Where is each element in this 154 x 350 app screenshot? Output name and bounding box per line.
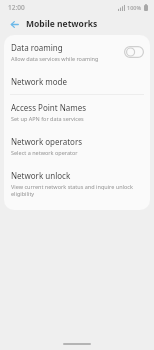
staticText: Allow data services while roaming (11, 55, 99, 62)
button[interactable]: Data roaming (4, 35, 150, 69)
button[interactable]: Back (7, 17, 21, 31)
staticText: Network mode (11, 76, 68, 87)
button[interactable]: Network operators (4, 129, 150, 163)
staticText: Network unlock (11, 170, 71, 181)
staticText: Mobile networks (26, 18, 98, 30)
button[interactable]: Access Point Names (4, 95, 150, 129)
staticText: Set up APN for data services (11, 115, 84, 122)
staticText: 100% (127, 4, 142, 11)
button[interactable]: Network unlock (4, 163, 150, 204)
staticText: Data roaming (11, 42, 63, 53)
staticText: 12:00 (8, 3, 25, 12)
staticText: Network operators (11, 136, 83, 147)
button[interactable]: Data roaming toggle (124, 46, 144, 58)
staticText: Access Point Names (11, 102, 87, 113)
staticText: View current network status and inquire … (11, 183, 144, 197)
staticText: Select a network operator (11, 149, 78, 156)
button[interactable]: Network mode (4, 69, 150, 94)
